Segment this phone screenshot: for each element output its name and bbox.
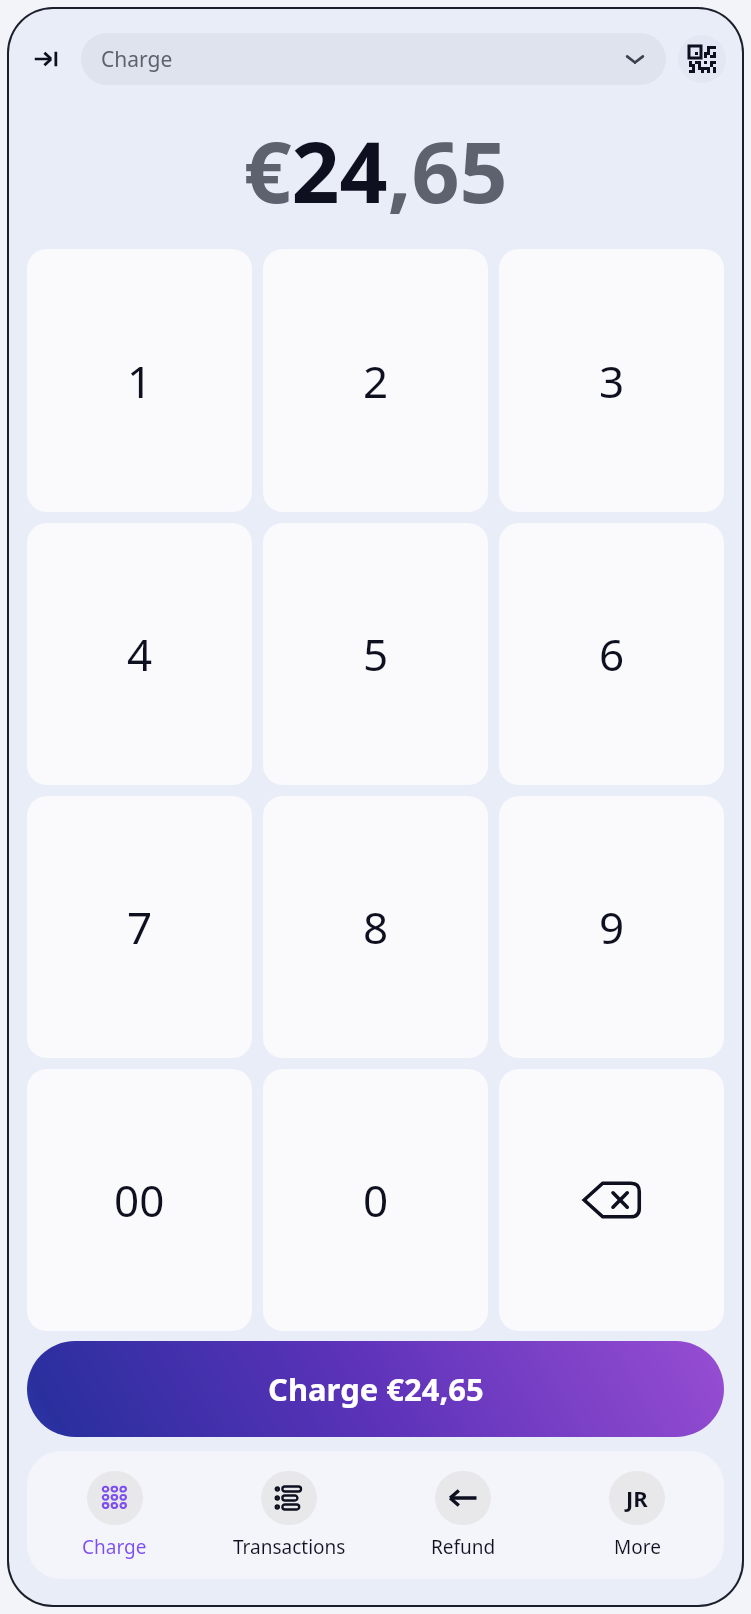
staticText: 2 xyxy=(363,351,389,411)
button[interactable]: 3 xyxy=(499,249,724,512)
staticText: JR xyxy=(626,1483,648,1513)
staticText: €24,65 xyxy=(243,113,508,227)
staticText: Transactions xyxy=(233,1534,346,1560)
staticText: 0 xyxy=(363,1170,389,1230)
staticText: Charge €24,65 xyxy=(268,1368,484,1410)
staticText: 6 xyxy=(599,624,625,684)
button[interactable]: Scan QR code xyxy=(678,35,726,83)
button[interactable]: 8 xyxy=(263,796,488,1058)
button[interactable]: 00 xyxy=(27,1069,252,1331)
button[interactable]: 4 xyxy=(27,523,252,785)
button[interactable]: 7 xyxy=(27,796,252,1058)
staticText: 7 xyxy=(127,897,153,957)
staticText: 9 xyxy=(599,897,625,957)
button[interactable]: Charge xyxy=(27,1451,202,1579)
button[interactable]: Exit xyxy=(25,37,69,81)
staticText: 5 xyxy=(363,624,389,684)
button[interactable]: Charge €24,65 xyxy=(27,1341,724,1437)
button[interactable]: JR xyxy=(550,1451,724,1579)
staticText: 4 xyxy=(127,624,153,684)
staticText: Charge xyxy=(82,1534,147,1560)
staticText: More xyxy=(614,1534,661,1560)
staticText: 3 xyxy=(599,351,625,411)
staticText: Refund xyxy=(431,1534,496,1560)
staticText: Charge xyxy=(101,45,173,74)
button[interactable]: 6 xyxy=(499,523,724,785)
button[interactable]: Transactions xyxy=(202,1451,376,1579)
button[interactable]: Backspace xyxy=(499,1069,724,1331)
button[interactable]: Refund xyxy=(376,1451,550,1579)
button[interactable]: 1 xyxy=(27,249,252,512)
staticText: 8 xyxy=(363,897,389,957)
staticText: 1 xyxy=(127,351,153,411)
button[interactable]: 5 xyxy=(263,523,488,785)
button[interactable]: 2 xyxy=(263,249,488,512)
staticText: 00 xyxy=(114,1170,165,1230)
button[interactable]: Charge xyxy=(81,33,666,85)
button[interactable]: 0 xyxy=(263,1069,488,1331)
button[interactable]: 9 xyxy=(499,796,724,1058)
